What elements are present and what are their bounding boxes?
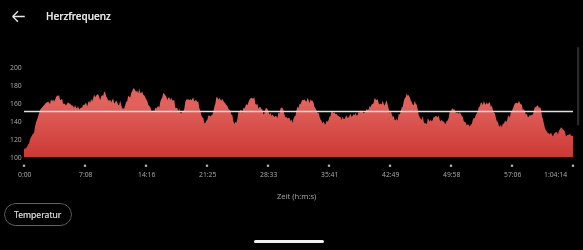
staticText: Zeit (h:m:s) xyxy=(277,191,317,201)
staticText: 28:33 xyxy=(260,170,278,179)
staticText: Herzfrequenz xyxy=(46,9,111,23)
button[interactable]: Temperatur xyxy=(4,203,72,226)
staticText: 160 xyxy=(10,99,22,108)
button[interactable]: Zurück xyxy=(5,3,31,29)
staticText: 7:08 xyxy=(79,170,93,179)
button[interactable]: Herzfrequenz-Diagramm xyxy=(24,58,573,158)
staticText: 49:58 xyxy=(443,170,461,179)
staticText: 42:49 xyxy=(382,170,400,179)
staticText: 14:16 xyxy=(138,170,156,179)
staticText: 100 xyxy=(10,153,22,162)
staticText: 140 xyxy=(10,117,22,126)
staticText: 21:25 xyxy=(199,170,217,179)
staticText: 0:00 xyxy=(18,170,32,179)
staticText: 120 xyxy=(10,135,22,144)
staticText: 1:04:14 xyxy=(544,170,568,179)
staticText: 57:06 xyxy=(504,170,522,179)
staticText: 35:41 xyxy=(321,170,339,179)
staticText: 180 xyxy=(10,81,22,90)
staticText: 200 xyxy=(10,63,22,72)
staticText: Temperatur xyxy=(14,209,62,221)
